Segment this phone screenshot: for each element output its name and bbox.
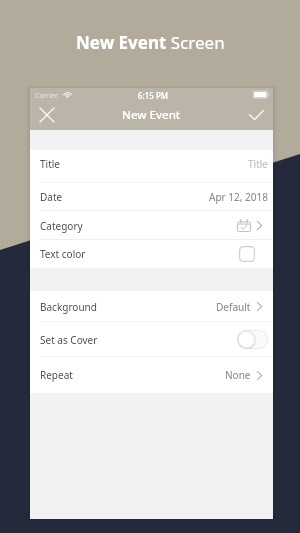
button[interactable]: Close bbox=[31, 104, 63, 130]
staticText: Repeat bbox=[40, 368, 73, 382]
staticText: Default bbox=[216, 300, 251, 314]
staticText: Text color bbox=[40, 247, 86, 261]
button[interactable]: Repeat bbox=[30, 357, 273, 393]
button[interactable]: Done bbox=[240, 104, 272, 130]
staticText: Category bbox=[40, 219, 83, 233]
button[interactable]: Set as Cover toggle bbox=[30, 322, 273, 357]
staticText: Background bbox=[40, 300, 97, 314]
staticText: New Event Screen bbox=[76, 31, 225, 54]
button[interactable]: Text color swatch bbox=[30, 240, 273, 268]
staticText: 6:15 PM bbox=[138, 90, 169, 101]
button[interactable]: Title bbox=[30, 150, 273, 183]
staticText: New Event bbox=[122, 107, 181, 123]
staticText: Title bbox=[248, 157, 268, 171]
staticText: Title bbox=[40, 157, 60, 171]
staticText: None bbox=[225, 368, 251, 382]
staticText: Carrier bbox=[35, 91, 58, 101]
button[interactable]: Category bbox=[30, 211, 273, 240]
button[interactable]: Background bbox=[30, 291, 273, 322]
staticText: Apr 12, 2018 bbox=[209, 190, 268, 204]
staticText: Date bbox=[40, 190, 63, 204]
staticText: Set as Cover bbox=[40, 333, 98, 347]
button[interactable]: Date bbox=[30, 183, 273, 211]
